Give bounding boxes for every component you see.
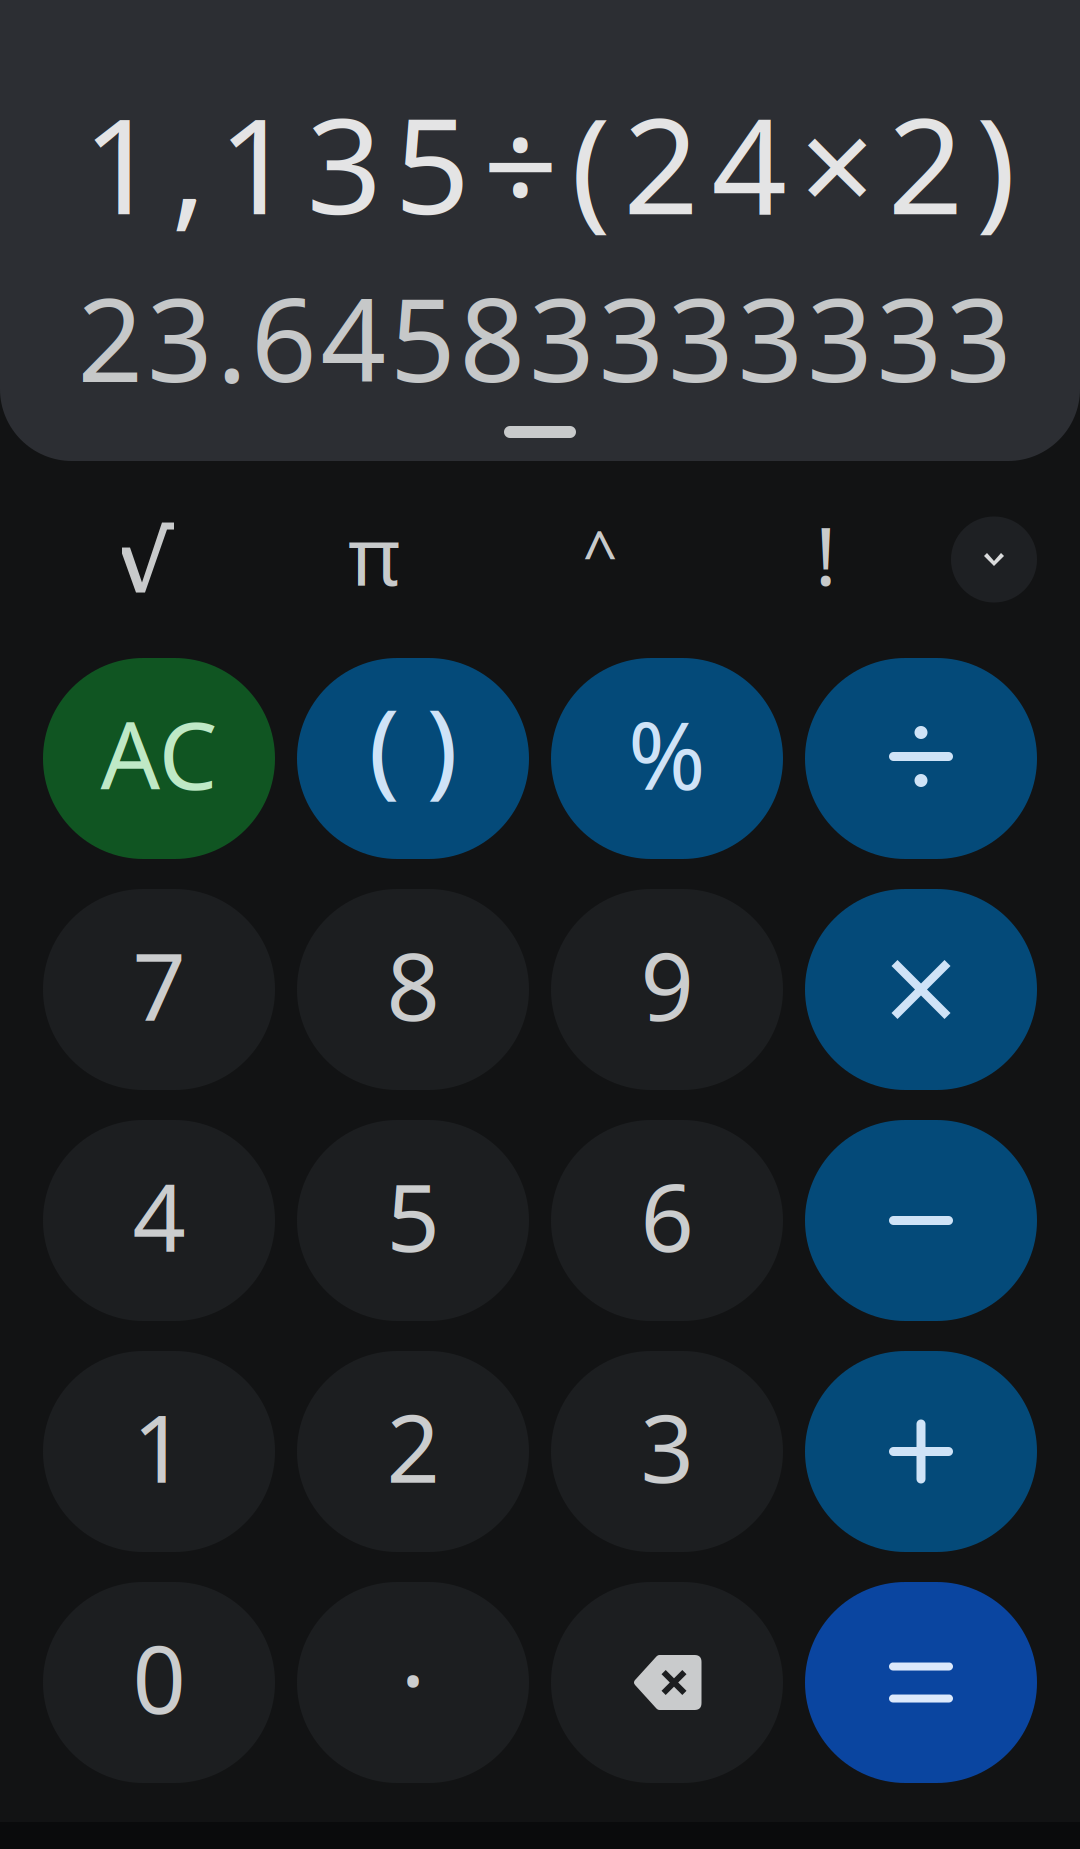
button[interactable]: Factorial <box>713 461 939 658</box>
button[interactable]: Decimal point <box>297 1582 529 1783</box>
staticText: 9 <box>640 922 693 1046</box>
staticText: 3 <box>640 1384 693 1508</box>
staticText: 4 <box>711 75 787 251</box>
staticText: 4 <box>320 261 386 414</box>
staticText: 4 <box>132 1153 185 1277</box>
staticText: 2 <box>888 75 964 251</box>
staticText: 3 <box>807 261 873 414</box>
staticText: 2 <box>386 1384 439 1508</box>
staticText: ÷ <box>483 75 559 251</box>
staticText: 6 <box>251 261 317 414</box>
staticText: 2 <box>77 261 143 414</box>
staticText: 3 <box>946 261 1012 414</box>
button[interactable]: Power <box>487 461 713 658</box>
staticText: 3 <box>147 261 213 414</box>
button[interactable]: All clear <box>43 658 275 859</box>
staticText: π <box>348 501 400 608</box>
staticText: 6 <box>640 1153 693 1277</box>
button[interactable]: 3 <box>551 1351 783 1552</box>
staticText: 8 <box>459 261 525 414</box>
button[interactable]: Square root <box>35 461 261 658</box>
button[interactable]: Percent <box>551 658 783 859</box>
button[interactable]: 0 <box>43 1582 275 1783</box>
button[interactable]: More functions <box>939 461 1049 658</box>
staticText: ( ) <box>368 676 457 814</box>
staticText: 2 <box>623 75 699 251</box>
button[interactable]: 1 <box>43 1351 275 1552</box>
staticText: 1 <box>83 75 159 251</box>
button[interactable]: 4 <box>43 1120 275 1321</box>
staticText: 3 <box>306 75 382 251</box>
staticText: 7 <box>132 922 185 1046</box>
staticText: AC <box>100 691 217 815</box>
staticText: ! <box>815 501 837 608</box>
button[interactable]: 6 <box>551 1120 783 1321</box>
staticText: 3 <box>876 261 942 414</box>
button[interactable]: Divide <box>805 658 1037 859</box>
staticText: 8 <box>386 922 439 1046</box>
staticText: 1 <box>132 1384 185 1508</box>
button[interactable]: 9 <box>551 889 783 1090</box>
staticText: 3 <box>529 261 595 414</box>
staticText: 5 <box>390 261 456 414</box>
staticText: 5 <box>395 75 471 251</box>
staticText: × <box>800 75 876 251</box>
staticText: % <box>628 691 706 815</box>
staticText: 0 <box>132 1615 185 1739</box>
staticText: 5 <box>386 1153 439 1277</box>
button[interactable]: Minus <box>805 1120 1037 1321</box>
button[interactable]: Multiply <box>805 889 1037 1090</box>
button[interactable]: 2 <box>297 1351 529 1552</box>
staticText: . <box>216 261 247 414</box>
staticText: · <box>400 1616 425 1740</box>
staticText: ( <box>571 75 611 251</box>
staticText: ) <box>976 75 1016 251</box>
button[interactable]: Parentheses <box>297 658 529 859</box>
button[interactable]: 7 <box>43 889 275 1090</box>
button[interactable]: Pi <box>261 461 487 658</box>
staticText: , <box>171 75 206 251</box>
button[interactable]: 5 <box>297 1120 529 1321</box>
button[interactable]: Backspace <box>551 1582 783 1783</box>
staticText: 3 <box>668 261 734 414</box>
staticText: 1 <box>218 75 294 251</box>
button[interactable]: 8 <box>297 889 529 1090</box>
staticText: ^ <box>582 512 617 593</box>
staticText: 3 <box>598 261 664 414</box>
button[interactable]: Plus <box>805 1351 1037 1552</box>
staticText: 3 <box>737 261 803 414</box>
button[interactable]: Equals <box>805 1582 1037 1783</box>
